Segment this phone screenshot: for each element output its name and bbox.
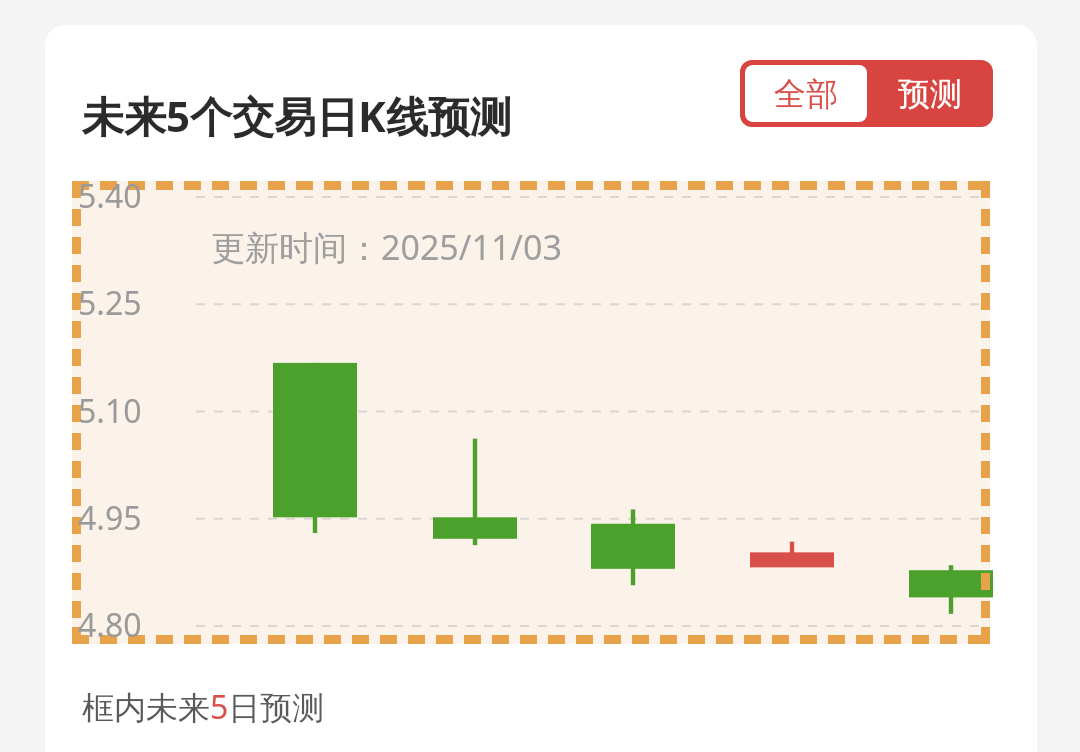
button[interactable]: 预测 — [867, 60, 993, 127]
button[interactable]: 全部 — [745, 65, 867, 122]
staticText: 4.95 — [78, 496, 142, 540]
staticText: 5.25 — [78, 281, 142, 325]
staticText: 5.40 — [78, 174, 142, 218]
staticText: 全部 — [774, 74, 838, 114]
staticText: 未来5个交易日K线预测 — [82, 87, 512, 144]
staticText: 更新时间：2025/11/03 — [211, 224, 562, 270]
staticText: 预测 — [898, 74, 962, 114]
staticText: 框内未来5日预测 — [82, 685, 325, 729]
staticText: 4.80 — [78, 603, 142, 647]
staticText: 5.10 — [78, 389, 142, 433]
